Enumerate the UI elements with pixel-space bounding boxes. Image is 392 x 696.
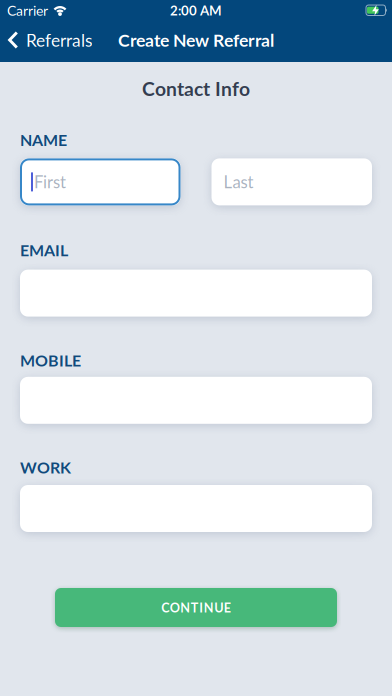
staticText: CONTINUE bbox=[161, 600, 231, 615]
button[interactable]: CONTINUE bbox=[55, 588, 337, 627]
staticText: First bbox=[34, 172, 66, 192]
staticText: Carrier bbox=[7, 2, 48, 19]
staticText: WORK bbox=[20, 458, 71, 477]
staticText: Referrals bbox=[26, 30, 93, 50]
button[interactable]: Back to Referrals bbox=[0, 30, 93, 56]
button[interactable]: First name bbox=[20, 158, 180, 205]
staticText: Contact Info bbox=[142, 77, 250, 100]
staticText: MOBILE bbox=[20, 351, 81, 370]
staticText: Create New Referral bbox=[118, 29, 274, 50]
button[interactable]: Last name bbox=[211, 158, 372, 205]
staticText: Last bbox=[223, 172, 253, 192]
button[interactable]: Email bbox=[20, 270, 372, 317]
staticText: 2:00 AM bbox=[170, 2, 222, 18]
staticText: EMAIL bbox=[20, 240, 68, 260]
staticText: NAME bbox=[20, 130, 67, 149]
